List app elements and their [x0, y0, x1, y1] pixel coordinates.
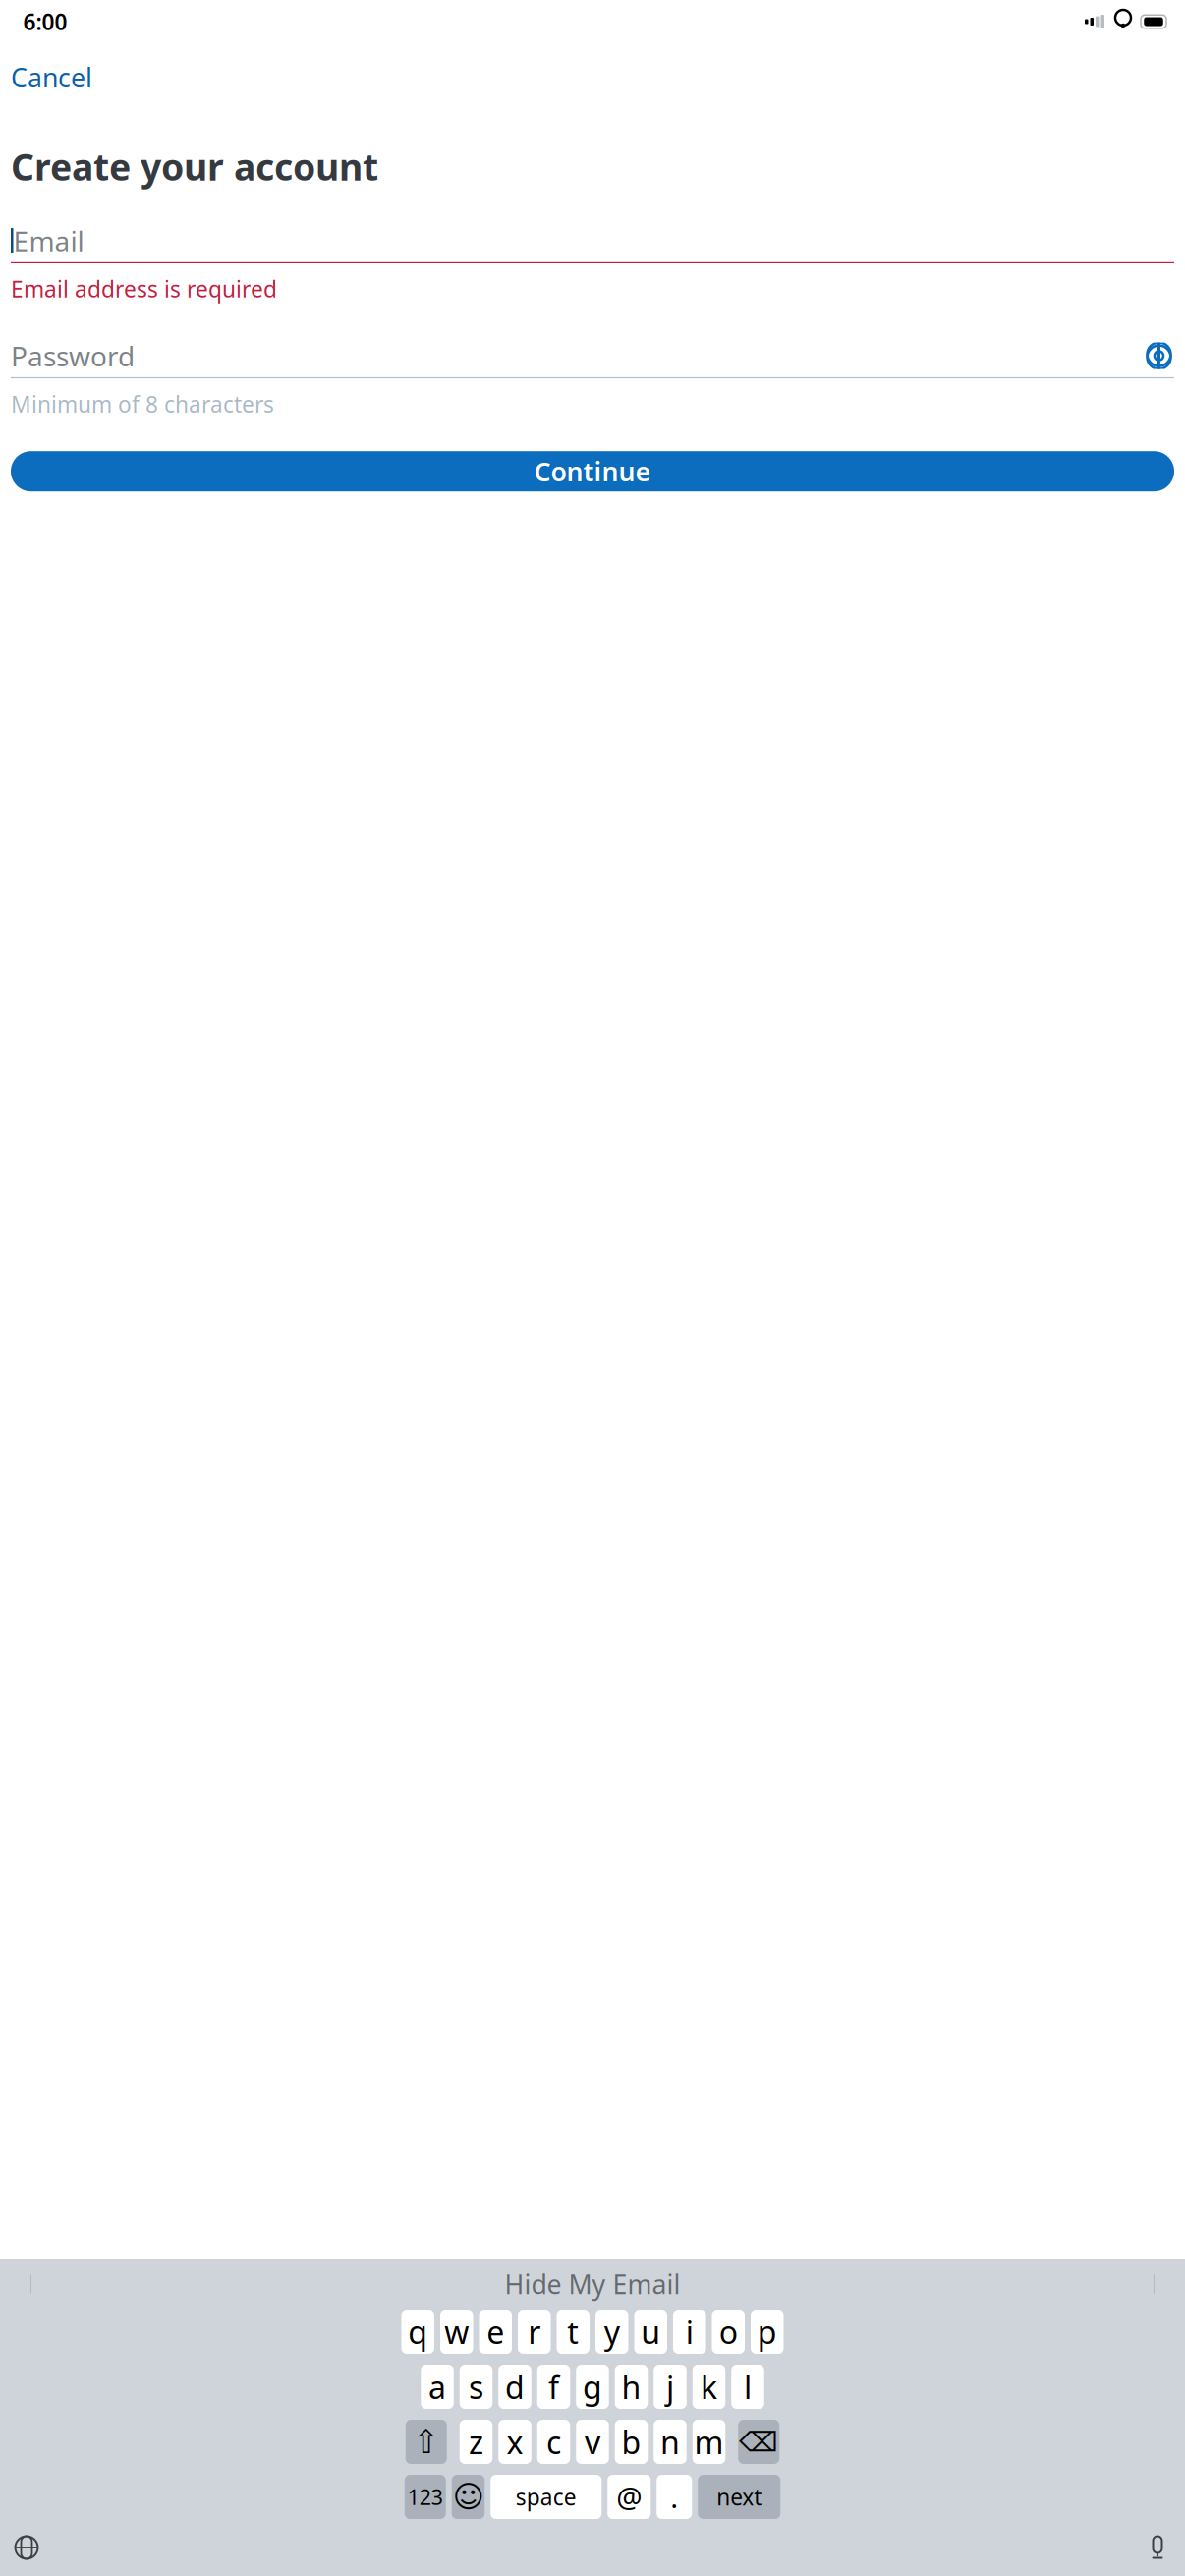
- staticText: t: [567, 2311, 579, 2353]
- staticText: l: [744, 2366, 752, 2408]
- button[interactable]: 123: [405, 2475, 446, 2519]
- staticText: 123: [408, 2483, 443, 2511]
- staticText: p: [757, 2311, 777, 2353]
- button[interactable]: n: [654, 2420, 687, 2464]
- button[interactable]: h: [615, 2365, 648, 2409]
- button[interactable]: d: [498, 2365, 531, 2409]
- staticText: z: [469, 2421, 483, 2463]
- button[interactable]: o: [712, 2310, 745, 2354]
- staticText: space: [516, 2482, 577, 2512]
- staticText: m: [694, 2421, 724, 2463]
- staticText: Password: [11, 337, 135, 374]
- button[interactable]: j: [654, 2365, 687, 2409]
- staticText: g: [583, 2366, 602, 2408]
- button[interactable]: l: [731, 2365, 764, 2409]
- staticText: a: [428, 2366, 446, 2408]
- staticText: f: [548, 2366, 559, 2408]
- staticText: 6:00: [23, 7, 67, 36]
- staticText: Minimum of 8 characters: [11, 389, 274, 419]
- staticText: e: [487, 2311, 504, 2353]
- button[interactable]: b: [615, 2420, 648, 2464]
- staticText: next: [717, 2482, 762, 2512]
- button[interactable]: @: [607, 2475, 651, 2519]
- staticText: Hide My Email: [505, 2267, 680, 2302]
- staticText: j: [666, 2366, 674, 2408]
- staticText: h: [621, 2366, 641, 2408]
- button[interactable]: x: [498, 2420, 531, 2464]
- button[interactable]: Cancel: [0, 54, 103, 101]
- button[interactable]: q: [401, 2310, 434, 2354]
- staticText: s: [469, 2366, 483, 2408]
- staticText: q: [408, 2311, 428, 2353]
- staticText: Email address is required: [11, 274, 277, 304]
- button[interactable]: g: [576, 2365, 609, 2409]
- staticText: c: [546, 2421, 561, 2463]
- button[interactable]: Delete: [738, 2420, 779, 2464]
- button[interactable]: v: [576, 2420, 609, 2464]
- button[interactable]: space: [491, 2475, 602, 2519]
- staticText: o: [719, 2311, 738, 2353]
- staticText: Email: [13, 222, 84, 259]
- button[interactable]: y: [595, 2310, 628, 2354]
- button[interactable]: Shift: [406, 2420, 447, 2464]
- button[interactable]: e: [479, 2310, 512, 2354]
- staticText: d: [505, 2366, 525, 2408]
- staticText: r: [528, 2311, 541, 2353]
- staticText: x: [507, 2421, 523, 2463]
- button[interactable]: a: [421, 2365, 454, 2409]
- button[interactable]: z: [460, 2420, 493, 2464]
- staticText: v: [585, 2421, 600, 2463]
- staticText: k: [701, 2366, 717, 2408]
- staticText: y: [604, 2311, 620, 2353]
- button[interactable]: Continue: [11, 451, 1174, 491]
- button[interactable]: s: [460, 2365, 493, 2409]
- staticText: ☺: [452, 2480, 484, 2514]
- button[interactable]: Hide My Email: [505, 2267, 680, 2302]
- button[interactable]: Next keyboard: [14, 2535, 39, 2560]
- staticText: n: [660, 2421, 680, 2463]
- button[interactable]: k: [693, 2365, 725, 2409]
- staticText: Cancel: [11, 60, 92, 95]
- button[interactable]: .: [657, 2475, 692, 2519]
- button[interactable]: w: [440, 2310, 473, 2354]
- button[interactable]: Emoji: [452, 2475, 485, 2519]
- button[interactable]: p: [751, 2310, 784, 2354]
- button[interactable]: i: [673, 2310, 706, 2354]
- staticText: u: [641, 2311, 660, 2353]
- button[interactable]: next: [698, 2475, 780, 2519]
- staticText: .: [670, 2478, 678, 2516]
- staticText: Continue: [534, 454, 651, 489]
- button[interactable]: u: [634, 2310, 667, 2354]
- staticText: ⇧: [412, 2423, 440, 2460]
- button[interactable]: c: [537, 2420, 570, 2464]
- staticText: i: [686, 2311, 694, 2353]
- button[interactable]: Password: [11, 333, 1174, 378]
- staticText: b: [621, 2421, 641, 2463]
- button[interactable]: t: [557, 2310, 590, 2354]
- button[interactable]: m: [693, 2420, 725, 2464]
- button[interactable]: Email: [11, 218, 1174, 263]
- button[interactable]: Dictate: [1147, 2534, 1168, 2561]
- staticText: w: [444, 2311, 469, 2353]
- staticText: ⌫: [739, 2426, 778, 2458]
- staticText: @: [616, 2478, 642, 2516]
- button[interactable]: f: [537, 2365, 570, 2409]
- button[interactable]: r: [518, 2310, 551, 2354]
- staticText: Create your account: [11, 142, 378, 191]
